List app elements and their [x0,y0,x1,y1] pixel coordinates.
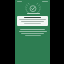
button[interactable]: Download certificate [17,16,48,26]
other: Verified certificate badge [22,5,44,12]
